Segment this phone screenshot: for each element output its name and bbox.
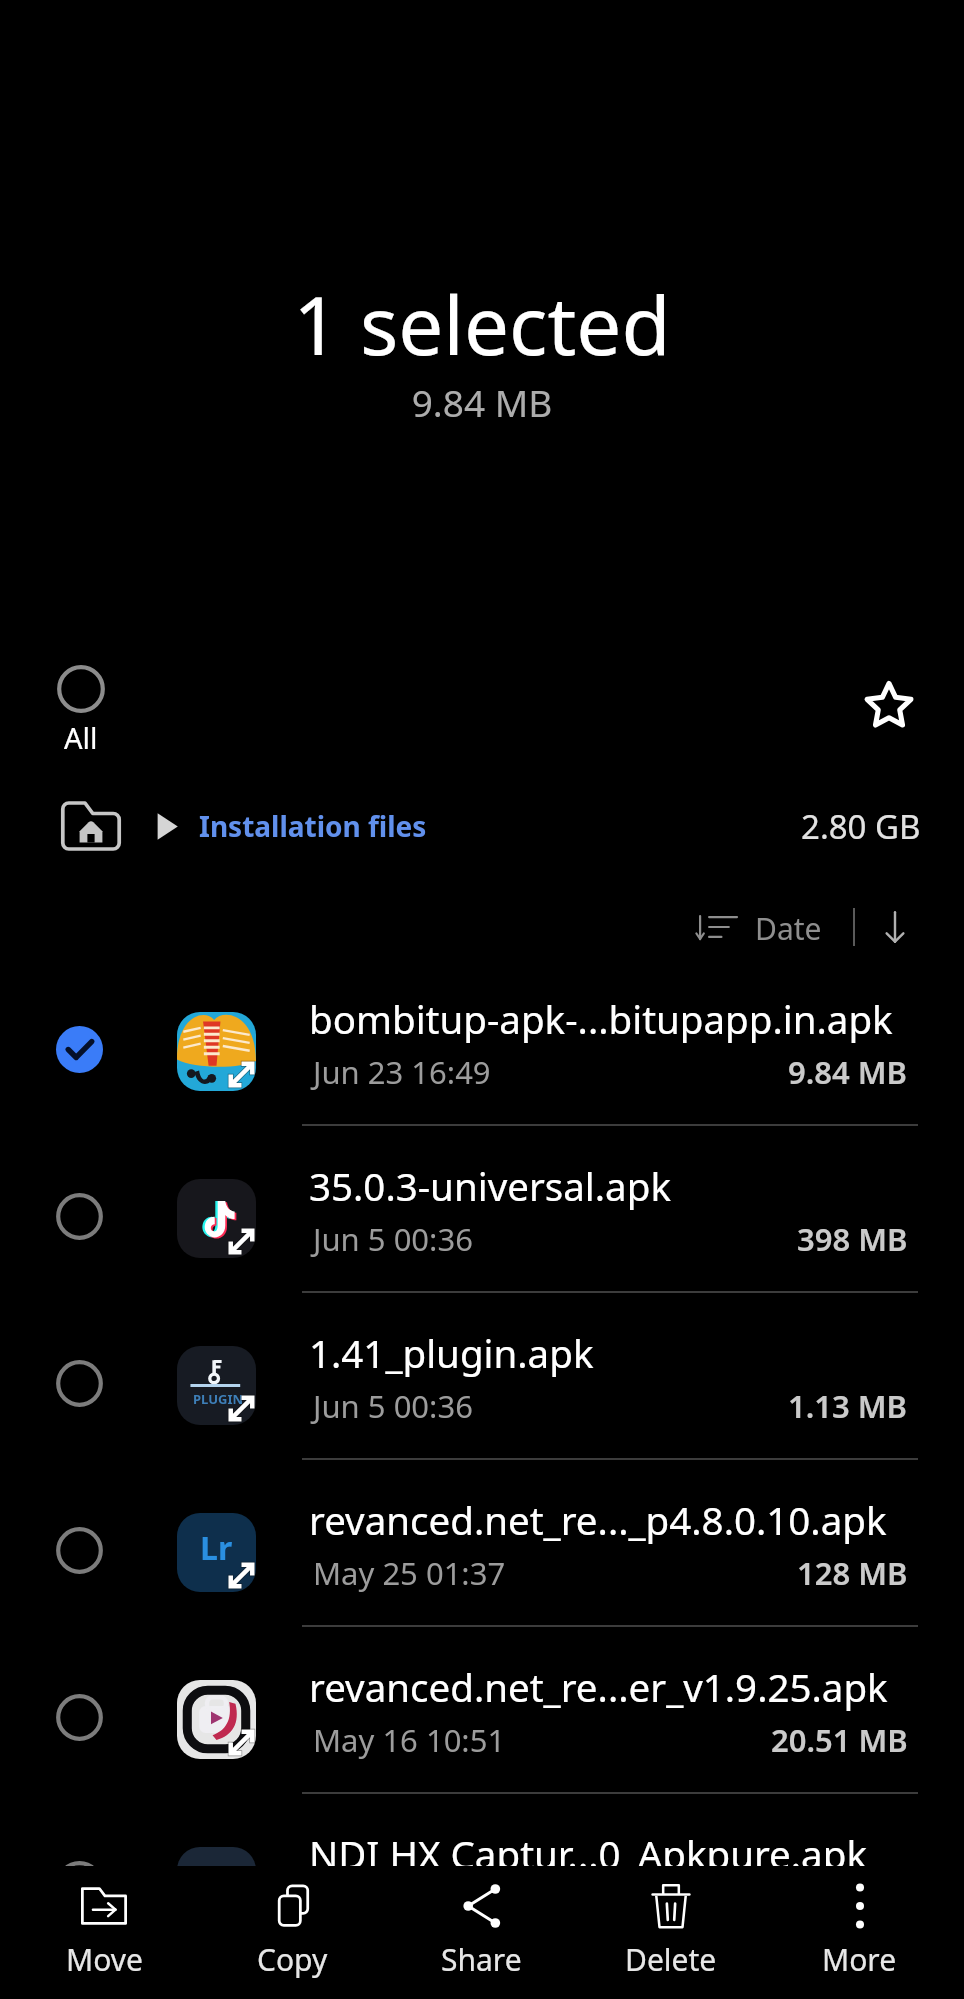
- staticText: 398 MB: [797, 1218, 908, 1260]
- staticText: 1 selected: [0, 269, 964, 378]
- button[interactable]: Installation files: [0, 786, 964, 866]
- button[interactable]: Delete: [576, 1866, 765, 1990]
- staticText: 4.20 MB: [788, 1886, 908, 1928]
- button[interactable]: 35.0.3-universal.apk: [0, 1126, 964, 1293]
- button[interactable]: Copy: [198, 1866, 387, 1990]
- staticText: 35.0.3-universal.apk: [309, 1160, 671, 1212]
- staticText: Share: [441, 1939, 522, 1980]
- staticText: Date: [755, 908, 822, 946]
- staticText: 9.84 MB: [0, 377, 964, 427]
- staticText: Move: [66, 1939, 143, 1980]
- button[interactable]: Move: [10, 1866, 198, 1990]
- staticText: Delete: [625, 1939, 717, 1980]
- staticText: PLUGIN: [193, 1390, 244, 1408]
- staticText: bombitup-apk-...bitupapp.in.apk: [309, 993, 893, 1045]
- staticText: revanced.net_re..._p4.8.0.10.apk: [309, 1494, 887, 1546]
- staticText: 9.84 MB: [788, 1051, 908, 1093]
- button[interactable]: Favourites: [851, 667, 927, 743]
- button[interactable]: Lr: [0, 1460, 964, 1627]
- staticText: Jun 5 00:36: [313, 1385, 473, 1427]
- staticText: All: [64, 718, 98, 757]
- staticText: May 25 01:37: [313, 1552, 506, 1594]
- staticText: 2.80 GB: [801, 804, 921, 849]
- staticText: revanced.net_re...er_v1.9.25.apk: [309, 1661, 888, 1713]
- button[interactable]: NDI HX Captur...0_Apkpure.apk: [0, 1794, 964, 1961]
- staticText: NDI HX Captur...0_Apkpure.apk: [309, 1828, 867, 1880]
- staticText: 1.41_plugin.apk: [309, 1327, 594, 1379]
- button[interactable]: revanced.net_re...er_v1.9.25.apk: [0, 1627, 964, 1794]
- button[interactable]: Share: [387, 1866, 576, 1990]
- staticText: 1.13 MB: [788, 1385, 908, 1427]
- staticText: Copy: [257, 1939, 328, 1980]
- button[interactable]: Sort direction: [878, 905, 912, 949]
- button[interactable]: bombitup-apk-...bitupapp.in.apk: [0, 959, 964, 1126]
- button[interactable]: More: [765, 1866, 954, 1990]
- staticText: 20.51 MB: [771, 1719, 908, 1761]
- staticText: May 10 12:02: [313, 1886, 506, 1928]
- staticText: Lr: [200, 1526, 233, 1570]
- staticText: Jun 23 16:49: [313, 1051, 491, 1093]
- button[interactable]: All: [34, 653, 128, 769]
- staticText: Installation files: [199, 807, 427, 845]
- button[interactable]: PLUGIN: [0, 1293, 964, 1460]
- staticText: More: [822, 1939, 897, 1980]
- staticText: May 16 10:51: [313, 1719, 506, 1761]
- staticText: Jun 5 00:36: [313, 1218, 473, 1260]
- staticText: 128 MB: [797, 1552, 908, 1594]
- button[interactable]: Date: [690, 902, 828, 952]
